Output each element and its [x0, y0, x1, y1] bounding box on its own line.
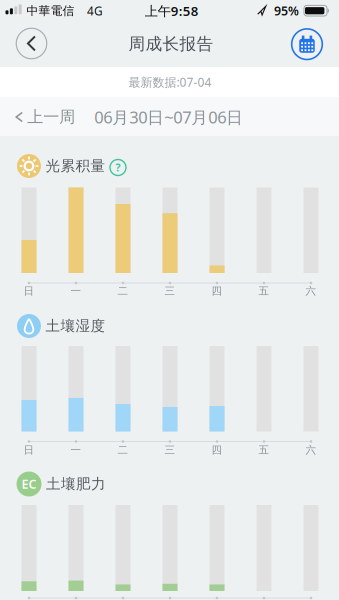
staticText: ? [115, 160, 120, 175]
staticText: 95% [274, 2, 299, 19]
staticText: 土壤肥力 [46, 475, 106, 493]
staticText: 六 [305, 284, 316, 298]
staticText: 二 [117, 284, 128, 298]
staticText: 五 [258, 443, 269, 457]
staticText: 周成长报告 [128, 33, 213, 54]
staticText: 六 [305, 443, 316, 457]
staticText: 五 [258, 284, 269, 298]
staticText: 4G [87, 3, 103, 19]
staticText: 06月30日~07月06日 [94, 106, 243, 128]
staticText: 三 [164, 284, 175, 298]
staticText: 上午9:58 [145, 2, 199, 20]
staticText: 三 [164, 443, 175, 457]
staticText: 二 [117, 443, 128, 457]
staticText: 四 [211, 443, 222, 457]
staticText: 光累积量 [45, 157, 105, 175]
staticText: 日 [23, 284, 34, 298]
button[interactable]: Back [16, 28, 47, 59]
staticText: 上一周 [27, 107, 75, 127]
staticText: 最新数据:07-04 [128, 74, 211, 90]
staticText: 一 [70, 284, 81, 298]
staticText: 中華電信 [26, 3, 74, 18]
button[interactable]: 帮助 [110, 159, 126, 175]
button[interactable]: 上一周 [14, 108, 76, 126]
staticText: 四 [211, 284, 222, 298]
staticText: EC [21, 475, 36, 492]
button[interactable]: 选择日期 [292, 29, 322, 59]
staticText: 一 [70, 443, 81, 457]
staticText: 土壤湿度 [45, 317, 105, 335]
staticText: 日 [23, 443, 34, 457]
